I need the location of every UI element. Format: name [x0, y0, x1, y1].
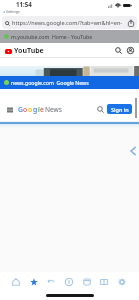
staticText: News — [45, 105, 62, 114]
button[interactable]: news.google.com Google News — [0, 76, 139, 89]
staticText: Settings — [6, 9, 20, 14]
staticText: Sign in — [111, 106, 129, 113]
staticText: https://news.google.com/?tab=wn&hl=en- — [12, 19, 123, 27]
button[interactable]: Page info — [62, 275, 75, 288]
staticText: o — [23, 105, 28, 114]
staticText: e — [40, 105, 44, 114]
staticText: o — [28, 105, 33, 114]
staticText: 11:54 — [16, 0, 32, 8]
staticText: YouTube — [14, 46, 44, 56]
other: Previous — [128, 146, 138, 156]
button[interactable]: m.youtube.com Home - YouTube — [0, 30, 139, 43]
button[interactable]: Reading list — [97, 275, 110, 288]
staticText: g — [33, 105, 38, 114]
staticText: G — [18, 105, 23, 114]
button[interactable]: Bookmarks — [27, 275, 40, 288]
button[interactable]: Sign in — [107, 104, 132, 114]
button[interactable]: Settings — [115, 275, 128, 288]
button[interactable]: Tabs — [80, 275, 93, 288]
button[interactable]: Back — [44, 275, 57, 288]
button[interactable]: Home — [9, 275, 22, 288]
staticText: l — [38, 105, 40, 114]
staticText: news.google.com Google News — [11, 79, 89, 86]
staticText: m.youtube.com Home - YouTube — [11, 33, 93, 40]
button[interactable]: https://news.google.com/?tab=wn&hl=en- — [2, 16, 137, 29]
button[interactable]: Search — [114, 46, 123, 55]
button[interactable]: Search — [95, 104, 105, 114]
button[interactable]: Main menu — [4, 104, 15, 115]
button[interactable]: Share — [126, 18, 135, 27]
button[interactable]: Account — [126, 46, 135, 55]
